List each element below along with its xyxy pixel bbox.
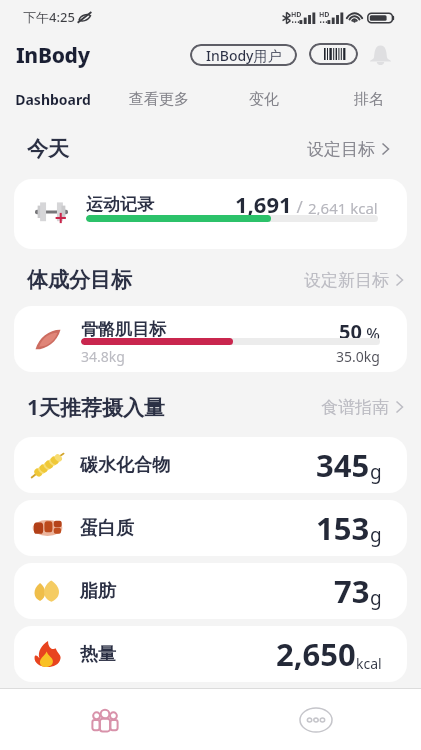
staticText: / — [292, 195, 308, 218]
staticText: 体成分目标 — [27, 267, 132, 293]
staticText: HD — [319, 10, 330, 20]
button[interactable]: 脂肪 — [14, 563, 407, 619]
button[interactable]: More — [210, 689, 421, 750]
button[interactable]: 食谱指南 — [321, 387, 403, 427]
staticText: 蛋白质 — [80, 517, 134, 540]
staticText: 设定新目标 — [304, 270, 389, 291]
staticText: kcal — [356, 654, 382, 673]
button[interactable]: 设定目标 — [307, 129, 389, 169]
button[interactable]: 运动记录 — [14, 179, 407, 249]
staticText: 50 — [339, 318, 362, 345]
button[interactable]: Scan barcode — [309, 43, 358, 65]
staticText: 1,691 — [235, 189, 292, 219]
staticText: 查看更多 — [129, 90, 189, 109]
staticText: 碳水化合物 — [80, 454, 170, 477]
button[interactable]: Notifications — [366, 41, 395, 70]
button[interactable]: 排名 — [316, 78, 421, 120]
staticText: 2,650 — [276, 633, 356, 675]
staticText: % — [362, 323, 380, 345]
staticText: 运动记录 — [86, 194, 154, 215]
staticText: 73 — [334, 570, 370, 612]
staticText: 345 — [316, 444, 370, 486]
staticText: 1天推荐摄入量 — [27, 393, 166, 422]
button[interactable]: InBody用户 — [190, 44, 297, 66]
staticText: 2,641 kcal — [308, 198, 378, 218]
button[interactable]: 蛋白质 — [14, 500, 407, 556]
staticText: 35.0kg — [336, 347, 380, 366]
button[interactable]: 查看更多 — [106, 78, 211, 120]
staticText: 今天 — [27, 136, 69, 162]
staticText: 下午4:25 — [23, 8, 75, 26]
staticText: 热量 — [80, 643, 116, 666]
staticText: HD — [291, 10, 302, 20]
staticText: g — [370, 459, 382, 485]
button[interactable]: Group — [0, 689, 210, 750]
staticText: 排名 — [354, 90, 384, 109]
button[interactable]: 设定新目标 — [304, 260, 403, 300]
staticText: 骨骼肌目标 — [81, 319, 166, 340]
staticText: 变化 — [249, 90, 279, 109]
button[interactable]: 热量 — [14, 626, 407, 682]
staticText: InBody用户 — [206, 46, 282, 65]
staticText: 34.8kg — [81, 347, 125, 366]
staticText: 食谱指南 — [321, 397, 389, 418]
staticText: g — [370, 522, 382, 548]
button[interactable]: 变化 — [211, 78, 316, 120]
button[interactable]: InBody — [16, 41, 90, 70]
staticText: 脂肪 — [80, 580, 116, 603]
staticText: Dashboard — [15, 90, 91, 109]
button[interactable]: Dashboard — [0, 78, 106, 120]
button[interactable]: 碳水化合物 — [14, 437, 407, 493]
button[interactable]: 骨骼肌目标 — [14, 306, 407, 372]
staticText: 设定目标 — [307, 139, 375, 160]
staticText: 153 — [316, 507, 370, 549]
staticText: g — [370, 585, 382, 611]
